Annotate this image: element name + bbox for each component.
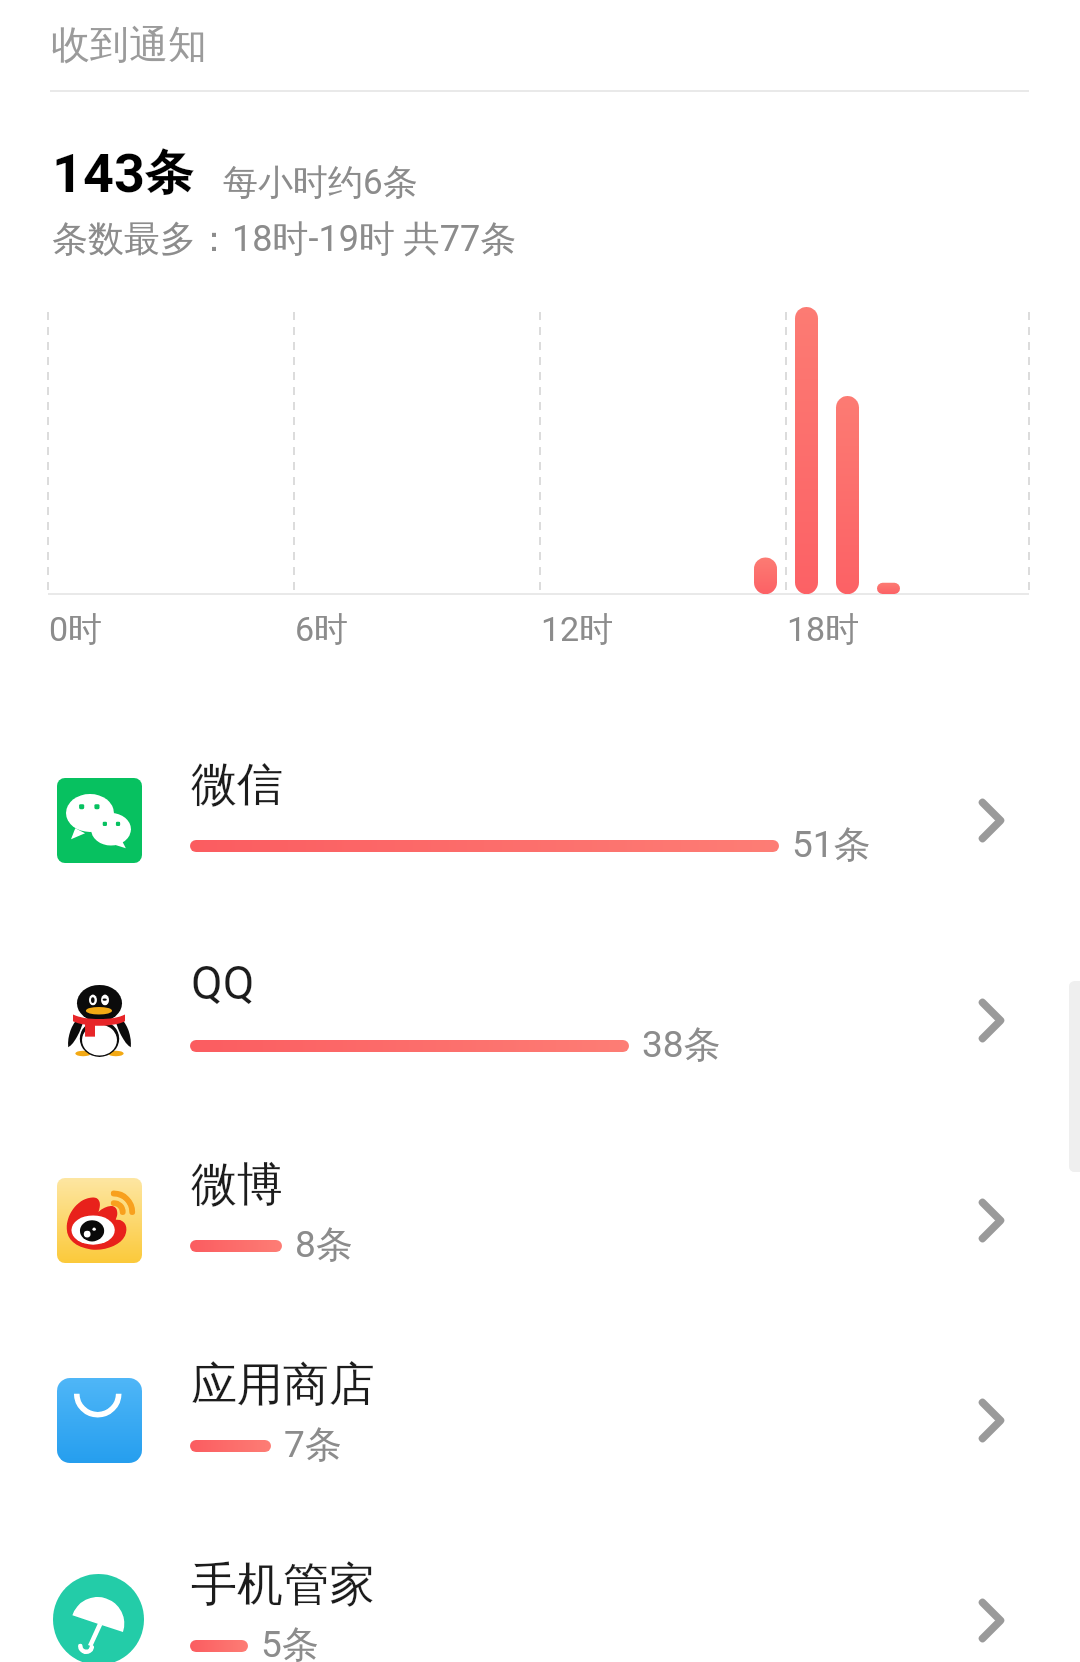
staticText: 18时 <box>787 608 860 651</box>
staticText: 手机管家 <box>191 1556 375 1614</box>
staticText: 微信 <box>191 756 283 814</box>
staticText: 5条 <box>261 1621 319 1662</box>
staticText: 12时 <box>541 608 614 651</box>
button[interactable]: QQ <box>0 920 1080 1120</box>
button[interactable]: 应用商店 <box>0 1320 1080 1520</box>
button[interactable]: 查看 手机管家 通知详情 <box>960 1580 1040 1660</box>
staticText: 38条 <box>642 1021 721 1068</box>
staticText: 143 <box>52 142 145 205</box>
staticText: 微博 <box>191 1156 283 1214</box>
button[interactable]: 查看 QQ 通知详情 <box>960 980 1040 1060</box>
button[interactable]: 查看 微信 通知详情 <box>960 780 1040 860</box>
staticText: 51条 <box>792 821 871 868</box>
staticText: 0时 <box>49 608 103 651</box>
button[interactable]: 手机管家 <box>0 1520 1080 1662</box>
staticText: 条数最多：18时-19时 共77条 <box>52 216 517 261</box>
staticText: 8条 <box>295 1221 353 1268</box>
staticText: 应用商店 <box>191 1356 375 1414</box>
staticText: 6时 <box>295 608 349 651</box>
button[interactable]: 微博 <box>0 1120 1080 1320</box>
button[interactable]: 微信 <box>0 720 1080 920</box>
staticText: QQ <box>191 956 255 1010</box>
button[interactable]: 查看 微博 通知详情 <box>960 1180 1040 1260</box>
staticText: 条 <box>145 143 193 203</box>
staticText: 收到通知 <box>51 20 207 69</box>
button[interactable]: 查看 应用商店 通知详情 <box>960 1380 1040 1460</box>
staticText: 每小时约6条 <box>223 160 418 204</box>
staticText: 7条 <box>284 1421 342 1468</box>
